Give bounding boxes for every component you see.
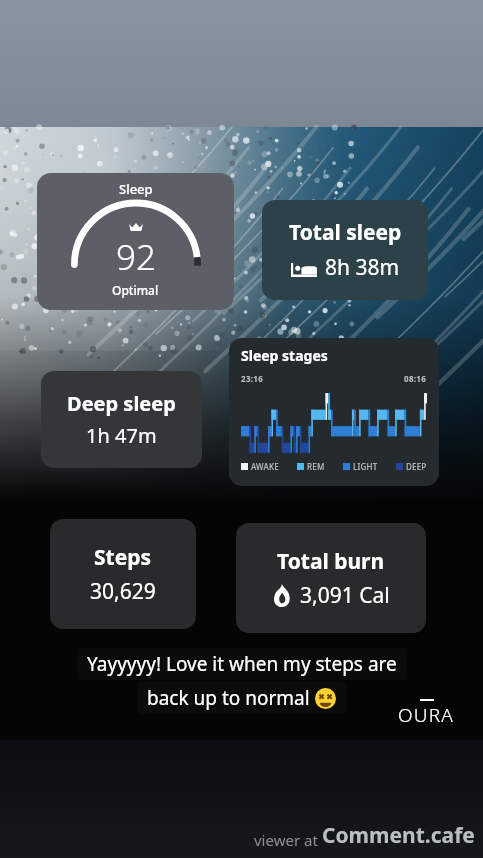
staticText: 92 — [116, 233, 156, 281]
staticText: Sleep stages — [241, 346, 427, 365]
staticText: 3,091 Cal — [300, 581, 390, 610]
staticText: 8h 38m — [325, 253, 400, 282]
staticText: Yayyyyy! Love it when my steps are — [87, 651, 397, 677]
staticText: DEEP — [406, 461, 427, 472]
staticText: OURA — [398, 702, 455, 728]
staticText: back up to normal — [147, 685, 315, 711]
button[interactable]: Deep sleep — [41, 371, 202, 468]
button[interactable]: Steps — [50, 519, 196, 629]
staticText: Total burn — [277, 547, 385, 576]
other: Calories burned — [272, 584, 291, 607]
staticText: Total sleep — [289, 218, 402, 247]
staticText: Comment.cafe — [322, 821, 475, 850]
staticText: viewer at — [254, 830, 322, 850]
staticText: 1h 47m — [86, 422, 157, 449]
button[interactable]: Sleep — [37, 173, 234, 310]
staticText: AWAKE — [251, 461, 279, 472]
staticText: REM — [307, 461, 325, 472]
staticText: Optimal — [112, 282, 159, 298]
button[interactable]: Total burn — [236, 523, 426, 633]
staticText: LIGHT — [353, 461, 378, 472]
staticText: Steps — [94, 543, 152, 572]
staticText: 08:16 — [404, 373, 427, 384]
staticText: 30,629 — [90, 577, 156, 606]
button[interactable]: Total sleep — [262, 200, 428, 300]
button[interactable]: Sleep stages — [229, 338, 439, 486]
staticText: Sleep — [119, 180, 153, 198]
staticText: 23:16 — [241, 373, 264, 384]
other: Sleep duration — [291, 259, 317, 277]
staticText: Deep sleep — [67, 390, 176, 417]
